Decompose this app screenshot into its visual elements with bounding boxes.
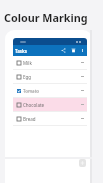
button[interactable]: Share [60,47,67,54]
staticText: Milk [23,60,32,66]
button[interactable]: Delete [70,47,77,54]
button[interactable]: Milk [13,56,87,69]
button[interactable]: Chocolate [13,98,87,111]
staticText: Chocolate [23,102,45,108]
staticText: Tomato [23,88,39,94]
button[interactable]: More options [80,48,85,53]
staticText: Tasks [15,48,27,54]
button[interactable]: Egg [13,70,87,83]
button[interactable]: Tomato [13,84,87,97]
button[interactable]: Add item [79,159,86,167]
button[interactable]: Bread [13,112,87,125]
staticText: Bread [23,116,36,122]
staticText: Egg [23,74,32,80]
staticText: Colour Marking [4,10,88,25]
